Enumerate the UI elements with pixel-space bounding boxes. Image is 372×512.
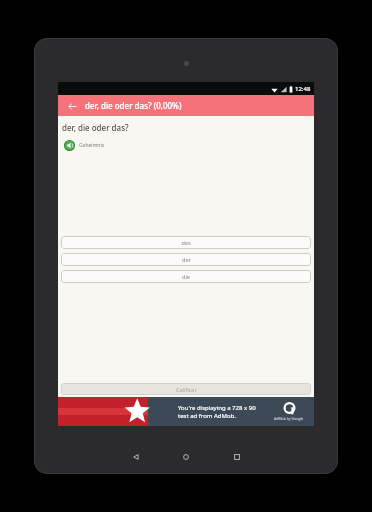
staticText: AdMob by Google xyxy=(274,416,304,421)
staticText: der, die oder das? (0,00%) xyxy=(85,100,182,111)
staticText: test ad from AdMob. xyxy=(178,412,236,420)
button[interactable]: Back xyxy=(129,450,143,464)
other: Play sound xyxy=(64,140,75,151)
staticText: Geheimnis xyxy=(79,142,105,149)
staticText: der xyxy=(182,256,191,263)
staticText: 12:48 xyxy=(295,85,311,93)
button[interactable]: das xyxy=(61,236,311,249)
button[interactable]: die xyxy=(61,270,311,283)
staticText: You're displaying a 728 x 90 xyxy=(178,404,256,412)
button[interactable]: der xyxy=(61,253,311,266)
button[interactable]: Calificar xyxy=(61,383,311,395)
button[interactable]: Recent apps xyxy=(230,450,244,464)
button[interactable]: Back xyxy=(64,98,80,114)
button[interactable]: Advertisement xyxy=(58,397,314,426)
staticText: das xyxy=(181,239,191,246)
button[interactable]: Home xyxy=(179,450,193,464)
staticText: die xyxy=(182,273,190,280)
staticText: der, die oder das? xyxy=(62,122,129,133)
button[interactable]: Play sound xyxy=(62,138,107,153)
staticText: Calificar xyxy=(176,386,197,393)
